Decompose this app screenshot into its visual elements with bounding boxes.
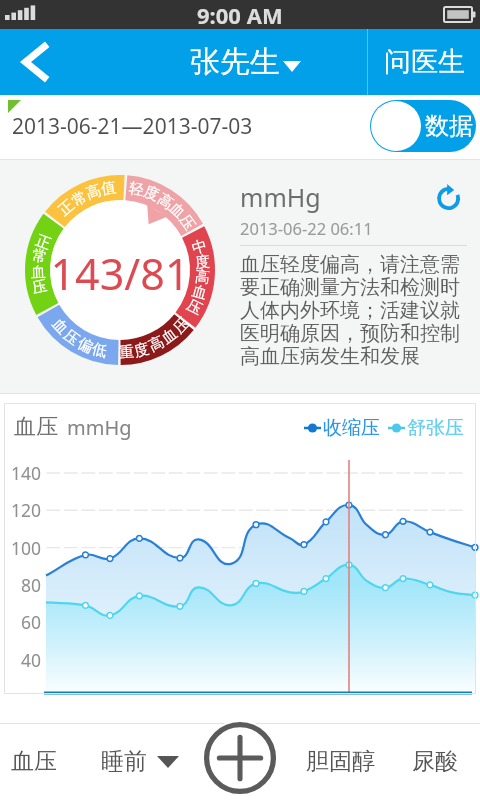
button[interactable]: 张先生 — [180, 29, 310, 95]
staticText: 143/81 — [30, 244, 210, 303]
staticText: 高 — [146, 332, 167, 356]
button[interactable]: 尿酸 — [407, 723, 463, 800]
staticText: 40 — [21, 648, 42, 672]
staticText: 低 — [90, 339, 109, 362]
staticText: mmHg — [67, 414, 132, 441]
staticText: 高 — [194, 267, 211, 288]
staticText: 正 — [33, 231, 54, 254]
staticText: 压 — [170, 314, 194, 338]
button[interactable]: Refresh — [431, 182, 467, 218]
button[interactable]: 胆固醇 — [296, 723, 384, 800]
staticText: 血 — [189, 281, 209, 304]
staticText: 压 — [183, 296, 205, 319]
staticText: 度 — [141, 182, 162, 205]
staticText: 血 — [48, 315, 72, 339]
button[interactable]: Back — [4, 29, 66, 95]
staticText: 血压轻度偏高，请注意需要正确测量方法和检测时人体内外环境；活建议就医明确原因，预… — [240, 252, 469, 369]
button[interactable]: 问医生 — [367, 29, 480, 95]
staticText: 压 — [175, 211, 199, 234]
button[interactable]: 血压 — [6, 723, 62, 800]
staticText: 120 — [11, 498, 42, 522]
button[interactable]: 数据 — [370, 100, 476, 152]
staticText: 问医生 — [384, 45, 465, 79]
staticText: 血 — [158, 324, 181, 348]
staticText: 100 — [11, 536, 42, 560]
staticText: 80 — [21, 573, 42, 597]
staticText: 偏 — [74, 334, 96, 357]
staticText: 常 — [30, 246, 48, 267]
staticText: 140 — [11, 461, 42, 485]
staticText: 高 — [83, 181, 104, 204]
staticText: 值 — [100, 178, 117, 199]
staticText: 度 — [194, 252, 211, 273]
staticText: 舒张压 — [407, 416, 464, 440]
staticText: 60 — [21, 610, 42, 634]
staticText: 数据 — [425, 111, 473, 141]
staticText: 血 — [31, 263, 46, 282]
staticText: 睡前 — [101, 747, 147, 776]
staticText: 收缩压 — [323, 416, 380, 440]
staticText: 压 — [30, 276, 49, 298]
staticText: 轻 — [127, 179, 146, 200]
staticText: 2013-06-22 06:11 — [240, 217, 373, 239]
staticText: 血 — [165, 199, 189, 223]
staticText: 尿酸 — [412, 747, 458, 776]
staticText: 胆固醇 — [306, 747, 375, 776]
staticText: mmHg — [240, 180, 321, 214]
staticText: 高 — [154, 190, 177, 214]
staticText: 血压 — [14, 413, 58, 441]
staticText: 9:00 AM — [197, 0, 283, 29]
button[interactable]: Add record — [200, 718, 280, 798]
staticText: 2013-06-21—2013-07-03 — [12, 112, 253, 141]
staticText: 中 — [190, 236, 209, 259]
staticText: 正 — [55, 196, 79, 220]
staticText: 常 — [68, 187, 91, 211]
staticText: 压 — [59, 326, 83, 350]
staticText: 度 — [132, 339, 151, 361]
staticText: 重 — [118, 342, 135, 362]
staticText: 张先生 — [190, 43, 280, 81]
staticText: 血压 — [11, 747, 57, 776]
button[interactable]: 睡前 — [101, 723, 193, 800]
